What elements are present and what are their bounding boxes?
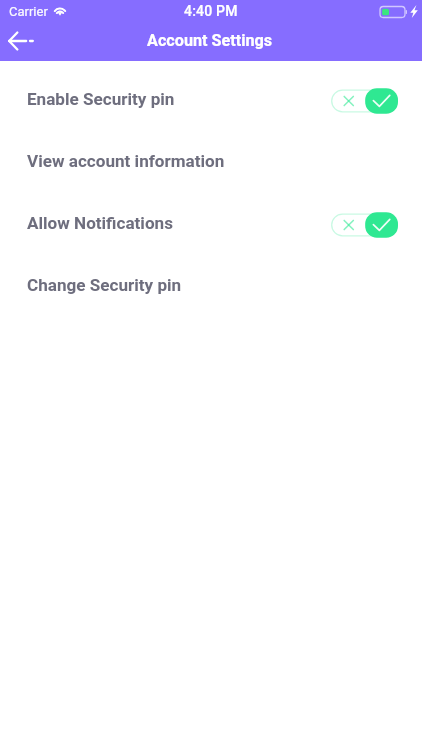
button[interactable]: Toggle xyxy=(331,212,398,238)
button[interactable]: Enable Security pin xyxy=(0,68,422,130)
staticText: Enable Security pin xyxy=(27,89,175,109)
staticText: Change Security pin xyxy=(27,275,182,295)
button[interactable]: Back xyxy=(1,22,43,61)
staticText: Carrier xyxy=(9,4,48,19)
button[interactable]: View account information xyxy=(0,130,422,192)
button[interactable]: Allow Notifications xyxy=(0,192,422,254)
button[interactable]: Toggle xyxy=(331,88,398,114)
staticText: Account Settings xyxy=(147,31,273,50)
staticText: View account information xyxy=(27,151,225,171)
button[interactable]: Change Security pin xyxy=(0,254,422,316)
staticText: Allow Notifications xyxy=(27,213,173,233)
staticText: 4:40 PM xyxy=(184,3,238,19)
